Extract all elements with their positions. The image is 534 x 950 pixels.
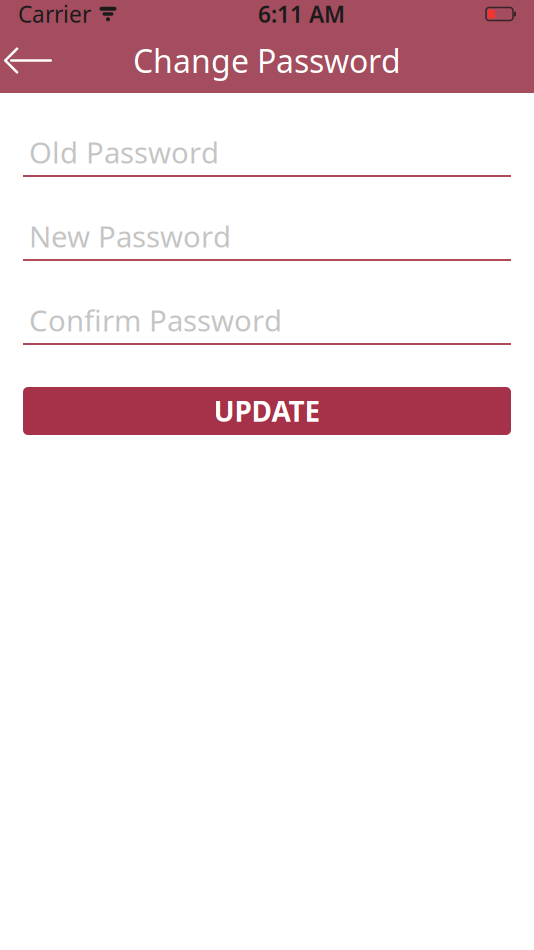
- staticText: UPDATE: [213, 392, 320, 430]
- staticText: New Password: [29, 216, 231, 255]
- staticText: Carrier: [18, 0, 91, 29]
- button[interactable]: Back: [0, 30, 62, 90]
- button[interactable]: UPDATE: [23, 387, 511, 435]
- staticText: Confirm Password: [29, 300, 282, 339]
- staticText: 6:11 AM: [258, 0, 345, 29]
- staticText: Change Password: [133, 39, 401, 82]
- staticText: Old Password: [29, 132, 219, 171]
